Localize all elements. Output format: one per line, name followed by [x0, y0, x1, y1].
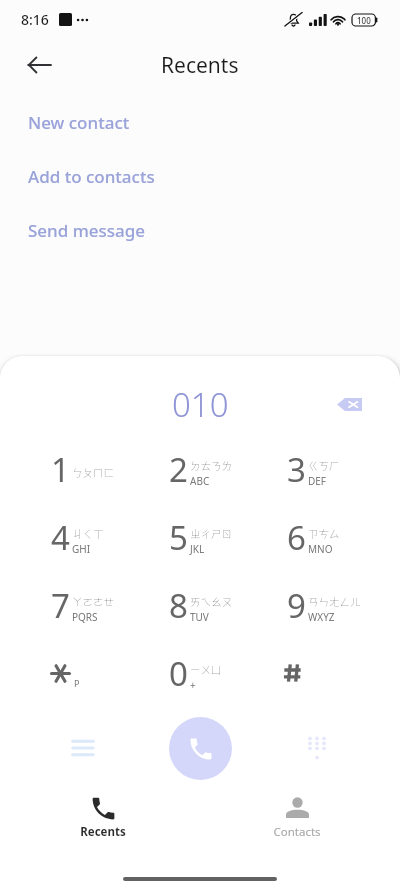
button[interactable]: 2: [128, 435, 246, 503]
staticText: Add to contacts: [28, 165, 155, 188]
staticText: WXYZ: [308, 610, 335, 624]
button[interactable]: 0: [128, 639, 246, 707]
staticText: 0: [169, 651, 188, 696]
staticText: ㄐㄑㄒ: [72, 526, 104, 541]
button[interactable]: [246, 639, 364, 707]
button[interactable]: 6: [246, 503, 364, 571]
staticText: ㄢㄣㄤㄥㄦ: [308, 594, 361, 609]
staticText: 8:16: [21, 10, 49, 29]
staticText: Recents: [161, 51, 239, 80]
staticText: ㄓㄔㄕㄖ: [190, 526, 232, 541]
staticText: 100: [357, 15, 371, 26]
button[interactable]: 1: [10, 435, 128, 503]
staticText: ㄧㄨㄩ: [190, 662, 222, 677]
button[interactable]: New contact: [0, 95, 400, 149]
staticText: 8: [169, 583, 188, 628]
button[interactable]: 7: [10, 571, 128, 639]
staticText: ㄗㄘㄙ: [308, 526, 340, 541]
button[interactable]: Backspace: [329, 383, 369, 423]
staticText: 010: [172, 382, 229, 424]
staticText: Contacts: [273, 824, 321, 840]
button[interactable]: P: [10, 639, 128, 707]
staticText: PQRS: [72, 610, 98, 624]
staticText: ㄍㄎㄏ: [308, 458, 340, 473]
button[interactable]: 3: [246, 435, 364, 503]
staticText: New contact: [28, 111, 130, 134]
button[interactable]: Dialpad: [296, 727, 338, 769]
button[interactable]: 5: [128, 503, 246, 571]
button[interactable]: Back: [17, 43, 61, 87]
staticText: 4: [51, 515, 70, 560]
staticText: ㄉㄊㄋㄌ: [190, 458, 232, 473]
button[interactable]: Add to contacts: [0, 149, 400, 203]
staticText: 6: [287, 515, 306, 560]
staticText: 2: [169, 447, 188, 492]
button[interactable]: Recents: [13, 797, 193, 849]
staticText: ABC: [190, 474, 210, 488]
staticText: Recents: [80, 824, 126, 840]
button[interactable]: 4: [10, 503, 128, 571]
button[interactable]: Send message: [0, 203, 400, 257]
button[interactable]: Call log: [62, 727, 104, 769]
staticText: 1: [51, 447, 70, 492]
button[interactable]: 8: [128, 571, 246, 639]
staticText: +: [190, 678, 196, 692]
staticText: Send message: [28, 219, 146, 242]
staticText: GHI: [72, 542, 91, 556]
staticText: 5: [169, 515, 188, 560]
staticText: 9: [287, 583, 306, 628]
staticText: ㄞㄟㄠㄡ: [190, 594, 232, 609]
button[interactable]: Contacts: [207, 797, 387, 849]
staticText: DEF: [308, 474, 327, 488]
staticText: 3: [287, 447, 306, 492]
staticText: TUV: [190, 610, 209, 624]
staticText: ㄅㄆㄇㄈ: [72, 465, 114, 480]
staticText: 7: [51, 583, 70, 628]
staticText: P: [74, 677, 80, 689]
button[interactable]: 9: [246, 571, 364, 639]
button[interactable]: Call: [169, 717, 232, 780]
staticText: MNO: [308, 542, 333, 556]
staticText: JKL: [190, 542, 205, 556]
staticText: ㄚㄛㄜㄝ: [72, 594, 114, 609]
